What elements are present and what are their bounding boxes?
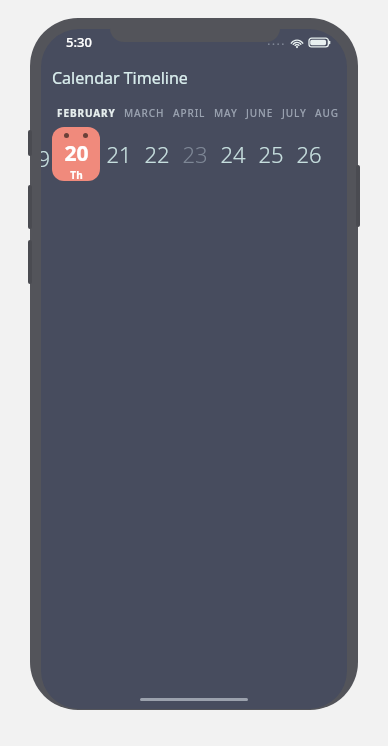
staticText: 22 [144,139,170,169]
staticText: 24 [220,139,246,169]
staticText: 23 [182,139,208,169]
button[interactable]: JUNE [242,105,278,121]
staticText: FEBRUARY [57,106,116,120]
button[interactable]: 25 [252,127,290,181]
button[interactable]: 26 [290,127,328,181]
staticText: 25 [258,139,284,169]
button[interactable]: 22 [138,127,176,181]
staticText: 19 [41,143,51,173]
button[interactable]: MAY [210,105,242,121]
staticText: JULY [282,106,307,120]
staticText: 20 [64,139,89,168]
button[interactable]: APRIL [169,105,210,121]
button[interactable]: FEBRUARY [53,105,120,121]
staticText: 21 [106,139,132,169]
staticText: JUNE [246,106,274,120]
button[interactable]: AUGUST [311,105,347,121]
button[interactable]: MARCH [120,105,169,121]
staticText: MARCH [124,106,165,120]
staticText: 5:30 [66,33,92,51]
staticText: Th [70,168,83,181]
button[interactable]: 23 [176,127,214,181]
staticText: MAY [214,106,238,120]
staticText: AUGUST [315,106,343,120]
button[interactable]: 24 [214,127,252,181]
button[interactable]: 21 [100,127,138,181]
button[interactable]: JULY [278,105,311,121]
button[interactable]: 20 [52,127,100,181]
staticText: 26 [296,139,322,169]
staticText: APRIL [173,106,206,120]
staticText: Calendar Timeline [52,67,188,89]
